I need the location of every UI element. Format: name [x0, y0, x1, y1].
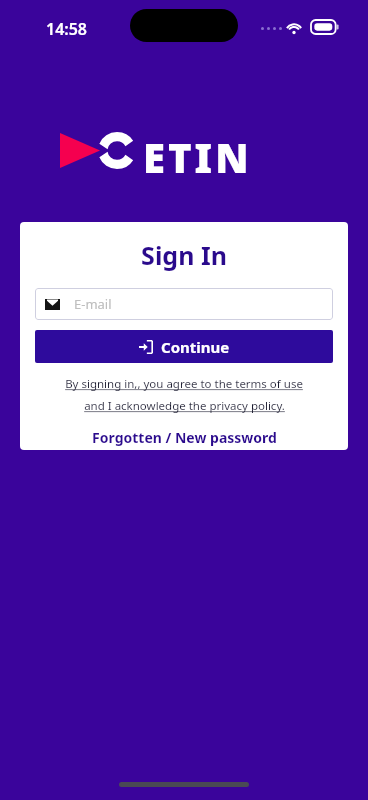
staticText: Sign In: [35, 238, 333, 272]
staticText: Forgotten / New password: [92, 428, 277, 447]
staticText: and I acknowledge the privacy policy.: [84, 398, 285, 414]
staticText: Continue: [161, 337, 230, 357]
button[interactable]: E-mail: [35, 288, 333, 320]
staticText: ETIN: [143, 130, 252, 176]
button[interactable]: Continue: [35, 330, 333, 363]
button[interactable]: By signing in,, you agree to the terms o…: [35, 376, 333, 414]
staticText: By signing in,, you agree to the terms o…: [65, 376, 303, 392]
staticText: E-mail: [74, 295, 112, 313]
button[interactable]: Forgotten / New password: [35, 428, 333, 447]
staticText: 14:58: [46, 18, 88, 40]
